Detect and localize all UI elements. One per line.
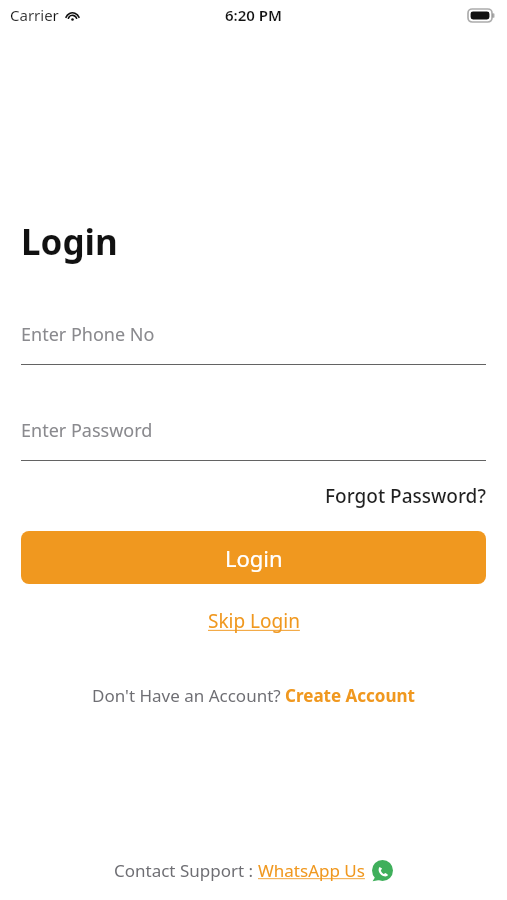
button[interactable]: Forgot Password? [325,483,486,509]
staticText: Enter Password [21,418,153,443]
staticText: WhatsApp Us [258,859,365,882]
button[interactable]: Skip Login [208,608,300,634]
staticText: 6:20 PM [225,5,282,25]
staticText: Carrier [10,5,59,25]
button[interactable]: Enter Password [21,418,486,461]
button[interactable]: WhatsApp Us [258,859,393,882]
button[interactable]: Don't Have an Account? Create Account [92,684,415,707]
staticText: Enter Phone No [21,322,155,347]
button[interactable]: Enter Phone No [21,322,486,365]
button[interactable]: Login [21,531,486,584]
staticText: Contact Support : [114,859,258,882]
staticText: Login [225,543,283,573]
staticText: Login [21,218,118,266]
